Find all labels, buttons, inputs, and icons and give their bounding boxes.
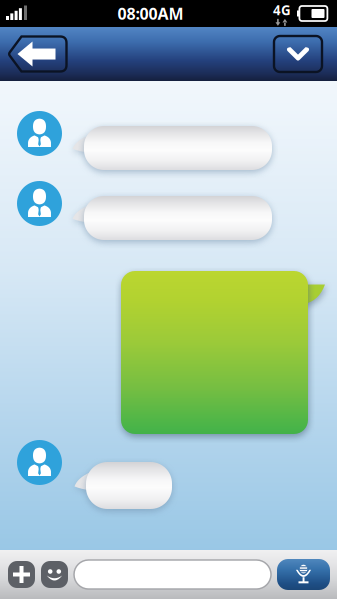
- button[interactable]: Collapse: [270, 27, 337, 81]
- staticText: 4G: [273, 1, 291, 19]
- staticText: 08:00AM: [117, 3, 183, 24]
- button[interactable]: Back: [0, 27, 72, 81]
- button[interactable]: Emoji: [41, 561, 68, 588]
- button[interactable]: Add attachment: [8, 561, 35, 588]
- button[interactable]: Voice message: [277, 559, 330, 590]
- button[interactable]: [74, 560, 271, 589]
